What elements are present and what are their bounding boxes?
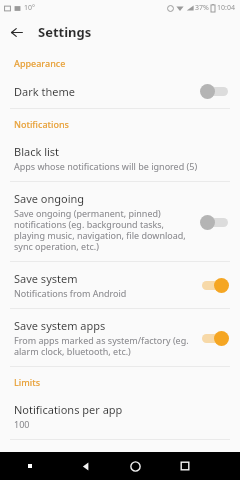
button[interactable]: Save ongoing bbox=[0, 182, 240, 262]
staticText: Save system apps bbox=[14, 318, 106, 333]
button[interactable]: Dark theme bbox=[0, 74, 240, 109]
staticText: Black list bbox=[14, 144, 60, 159]
staticText: Appearance bbox=[14, 57, 66, 69]
button[interactable]: Back bbox=[0, 16, 32, 48]
button[interactable]: Back bbox=[60, 452, 110, 480]
staticText: 10:04 bbox=[217, 3, 235, 13]
staticText: Limits bbox=[14, 376, 41, 388]
staticText: Save ongoing (permanent, pinned) notific… bbox=[14, 207, 194, 252]
staticText: Dark theme bbox=[14, 84, 75, 99]
button[interactable]: Save system apps bbox=[0, 309, 240, 367]
button[interactable]: Recents bbox=[160, 452, 210, 480]
button[interactable]: Notifications per app bbox=[0, 393, 240, 440]
staticText: Save ongoing bbox=[14, 191, 85, 206]
staticText: Notifications per app bbox=[14, 402, 123, 417]
staticText: Notifications bbox=[14, 118, 69, 130]
staticText: From apps marked as system/factory (eg. … bbox=[14, 334, 194, 357]
staticText: Save system bbox=[14, 271, 78, 286]
staticText: Notifications from Android bbox=[14, 287, 127, 299]
button[interactable]: Menu bbox=[0, 452, 60, 480]
staticText: 100 bbox=[14, 418, 30, 430]
button[interactable]: Home bbox=[110, 452, 160, 480]
staticText: 37% bbox=[195, 3, 209, 13]
staticText: 10° bbox=[24, 3, 36, 13]
button[interactable]: Black list bbox=[0, 135, 240, 182]
button[interactable]: Save system bbox=[0, 262, 240, 309]
staticText: Apps whose notifications will be ignored… bbox=[14, 160, 198, 172]
staticText: Settings bbox=[38, 23, 92, 41]
